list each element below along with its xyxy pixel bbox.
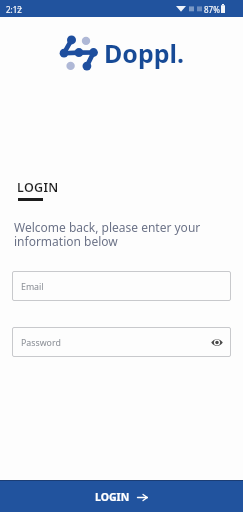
staticText: Password <box>21 337 61 349</box>
staticText: Email <box>21 281 44 293</box>
staticText: Welcome back, please enter your informat… <box>14 219 201 249</box>
staticText: 2:12 <box>6 4 22 15</box>
staticText: LOGIN <box>95 490 130 504</box>
button[interactable]: Password <box>12 327 231 357</box>
staticText: Doppl. <box>104 36 185 70</box>
staticText: LOGIN <box>17 179 59 196</box>
staticText: 87% <box>204 4 220 15</box>
button[interactable]: LOGIN <box>0 481 243 512</box>
button[interactable]: Email <box>12 271 231 301</box>
button[interactable]: Show password <box>208 333 226 351</box>
